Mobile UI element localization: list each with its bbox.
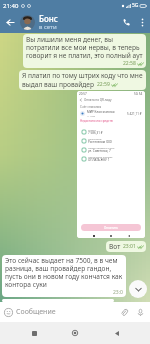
button[interactable]: More options: [135, 11, 149, 33]
staticText: Сумма: [88, 128, 96, 131]
staticText: Бонс: [39, 13, 58, 24]
button[interactable]: Attach file: [116, 302, 132, 322]
button[interactable]: Emoji: [0, 302, 16, 322]
button[interactable]: Оплатить: [81, 224, 141, 231]
staticText: 22:59: [97, 81, 110, 88]
staticText: ОПЛАТА ЖКУ 1: [88, 158, 110, 162]
button[interactable]: Back: [0, 11, 20, 33]
button[interactable]: Recent apps: [26, 325, 42, 341]
button[interactable]: Home: [67, 325, 83, 341]
button[interactable]: Record voice message: [132, 302, 148, 322]
staticText: 5G 54: [134, 92, 143, 96]
staticText: Оплата по QR-коду: [84, 98, 112, 102]
staticText: Это сейчас выдает на 7500, в в чем разни…: [5, 256, 123, 289]
staticText: Ростелеком (ОО): [88, 140, 113, 144]
button[interactable]: Call: [117, 11, 135, 33]
staticText: Вы лишили меня денег, вы потратили все м…: [26, 35, 143, 60]
staticText: МИР Классическая: [87, 110, 115, 114]
button[interactable]: Profile photo: [20, 15, 35, 30]
staticText: 20:57: [79, 92, 87, 96]
staticText: Назначение платежа: [88, 155, 113, 158]
staticText: 5G: [132, 2, 139, 9]
staticText: Недостаточно средств: [80, 119, 113, 123]
staticText: в сети: [39, 23, 57, 31]
staticText: Оплатить: [104, 226, 118, 230]
button[interactable]: Я платил по тому штрих коду что мне: [19, 70, 146, 90]
staticText: Сообщение: [16, 307, 116, 317]
staticText: 5 421,11 ₽: [127, 112, 142, 116]
button[interactable]: Вот: [106, 241, 146, 252]
staticText: •• 1482: [87, 114, 96, 117]
button[interactable]: Back: [109, 325, 125, 341]
staticText: Счёт списания: [80, 105, 102, 109]
staticText: Получатель: [88, 137, 102, 140]
staticText: Номер лицевого счета: [88, 146, 115, 149]
staticText: Я платил по тому штрих коду что мне: [22, 71, 143, 80]
button[interactable]: Это сейчас выдает на 7500, в в чем разни…: [2, 255, 126, 297]
staticText: 21:40: [3, 2, 19, 10]
staticText: 23:01: [123, 243, 136, 250]
staticText: Вот: [109, 242, 121, 251]
staticText: выдал ваш провайдер: [22, 80, 95, 89]
button[interactable]: Вы лишили меня денег, вы потратили все м…: [23, 34, 146, 68]
button[interactable]: Алексей, мне правда грустно что: [2, 299, 114, 302]
staticText: ул. Советская, 7: [88, 149, 111, 153]
staticText: 22:58: [123, 60, 136, 67]
button[interactable]: Photo: [77, 91, 145, 238]
button[interactable]: Scroll to bottom: [129, 280, 147, 298]
staticText: 7 586,31 ₽: [88, 131, 103, 135]
staticText: 23:0: [113, 289, 123, 296]
